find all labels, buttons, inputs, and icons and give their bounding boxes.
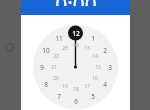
staticText: 14 [92, 53, 98, 60]
staticText: 19 [62, 83, 68, 90]
staticText: 16 [92, 75, 98, 82]
staticText: 00 [73, 42, 79, 49]
staticText: 9 [40, 63, 44, 72]
staticText: 10 [42, 46, 50, 55]
staticText: 6 [74, 97, 78, 106]
staticText: 18 [73, 86, 79, 93]
button[interactable]: Clock, select hour [21, 0, 130, 110]
staticText: 5 [91, 92, 95, 101]
staticText: 8 [44, 80, 48, 89]
staticText: 17 [84, 83, 90, 90]
staticText: 13 [84, 45, 90, 52]
button[interactable]: 0:00 [21, 0, 130, 15]
staticText: 12 [72, 29, 80, 38]
staticText: 3 [108, 63, 112, 72]
staticText: 21 [51, 64, 57, 71]
staticText: 20 [53, 75, 59, 82]
staticText: 22 [53, 53, 59, 60]
staticText: 2 [103, 46, 107, 55]
staticText: 4 [103, 80, 107, 89]
staticText: 7 [57, 92, 61, 101]
staticText: 15 [95, 64, 101, 71]
button[interactable]: Option [5, 43, 14, 52]
staticText: 0:00 [55, 0, 97, 6]
staticText: 23 [62, 45, 68, 52]
staticText: 11 [55, 34, 63, 43]
staticText: 1 [91, 34, 95, 43]
